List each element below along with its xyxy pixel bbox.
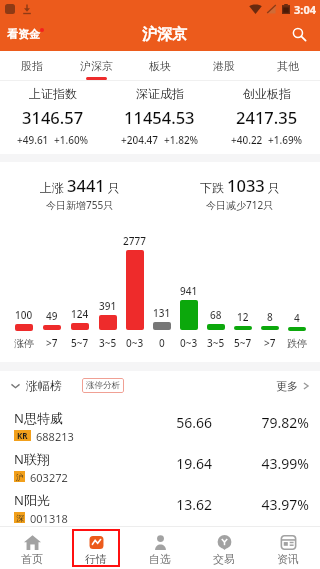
staticText: 沪深京 bbox=[80, 59, 113, 73]
staticText: 688213 bbox=[36, 429, 74, 441]
staticText: 板块 bbox=[149, 59, 171, 73]
staticText: N联翔 bbox=[14, 450, 50, 468]
staticText: 3:04 bbox=[294, 2, 316, 16]
staticText: 5~7 bbox=[234, 336, 252, 350]
staticText: 8 bbox=[267, 310, 273, 324]
staticText: 今日新增755只 bbox=[46, 198, 114, 212]
button[interactable]: 上涨 bbox=[0, 162, 160, 215]
staticText: 港股 bbox=[213, 59, 235, 73]
staticText: 43.97% bbox=[259, 495, 309, 514]
button[interactable]: 沪深京 bbox=[64, 51, 128, 80]
staticText: 603272 bbox=[30, 470, 68, 482]
staticText: 0~3 bbox=[180, 336, 198, 350]
staticText: +204.47 bbox=[121, 133, 159, 147]
button[interactable]: 行情 bbox=[64, 527, 128, 569]
staticText: 391 bbox=[99, 299, 117, 313]
staticText: +1.60% bbox=[54, 133, 89, 147]
staticText: 只 bbox=[268, 180, 280, 195]
staticText: >7 bbox=[46, 336, 58, 350]
staticText: KR bbox=[17, 430, 28, 441]
staticText: 5~7 bbox=[71, 336, 89, 350]
staticText: +49.61 bbox=[17, 133, 49, 147]
staticText: N思特威 bbox=[14, 409, 63, 427]
staticText: 3441 bbox=[67, 174, 105, 196]
staticText: 行情 bbox=[85, 552, 107, 566]
staticText: 只 bbox=[108, 180, 120, 195]
staticText: 0~3 bbox=[126, 336, 144, 350]
staticText: 跌停 bbox=[287, 337, 307, 350]
staticText: +40.22 bbox=[231, 133, 263, 147]
staticText: >7 bbox=[264, 336, 276, 350]
staticText: 资讯 bbox=[277, 552, 299, 566]
staticText: 100 bbox=[15, 308, 33, 322]
staticText: 56.66 bbox=[156, 413, 212, 432]
button[interactable]: 上证指数 bbox=[0, 81, 106, 154]
button[interactable]: N联翔 bbox=[0, 441, 320, 482]
staticText: 4 bbox=[294, 311, 300, 325]
staticText: 13.62 bbox=[156, 495, 212, 514]
staticText: 创业板指 bbox=[243, 86, 291, 101]
staticText: N阳光 bbox=[14, 491, 50, 509]
staticText: 12 bbox=[237, 310, 249, 324]
staticText: 2417.35 bbox=[236, 106, 298, 128]
staticText: 深证成指 bbox=[136, 86, 184, 101]
staticText: 49 bbox=[46, 309, 58, 323]
staticText: 1033 bbox=[227, 174, 265, 196]
staticText: +1.82% bbox=[164, 133, 199, 147]
staticText: 2777 bbox=[123, 234, 146, 248]
staticText: +1.69% bbox=[268, 133, 303, 147]
button[interactable]: 股指 bbox=[0, 51, 64, 80]
staticText: 看资金 bbox=[7, 27, 40, 41]
button[interactable]: 自选 bbox=[128, 527, 192, 569]
staticText: 3146.57 bbox=[22, 106, 84, 128]
staticText: 19.64 bbox=[156, 454, 212, 473]
staticText: 3~5 bbox=[99, 336, 117, 350]
button[interactable]: 深证成指 bbox=[106, 81, 213, 154]
staticText: 首页 bbox=[21, 552, 43, 566]
staticText: 沪 bbox=[16, 472, 24, 482]
staticText: 131 bbox=[153, 306, 171, 320]
staticText: 更多 bbox=[276, 379, 298, 393]
staticText: 上证指数 bbox=[29, 86, 77, 101]
staticText: 43.99% bbox=[259, 454, 309, 473]
staticText: 68 bbox=[210, 308, 222, 322]
staticText: 124 bbox=[71, 307, 89, 321]
button[interactable]: 下跌 bbox=[160, 162, 320, 215]
staticText: 001318 bbox=[30, 511, 68, 523]
button[interactable]: 首页 bbox=[0, 527, 64, 569]
button[interactable]: N阳光 bbox=[0, 482, 320, 523]
staticText: 自选 bbox=[149, 552, 171, 566]
staticText: 上涨 bbox=[40, 180, 64, 195]
staticText: 0 bbox=[159, 336, 165, 350]
staticText: 11454.53 bbox=[124, 106, 195, 128]
staticText: 股指 bbox=[21, 59, 43, 73]
staticText: 3~5 bbox=[207, 336, 225, 350]
staticText: 涨停 bbox=[14, 337, 34, 350]
button[interactable]: 其他 bbox=[256, 51, 320, 80]
staticText: 其他 bbox=[277, 59, 299, 73]
staticText: 下跌 bbox=[200, 180, 224, 195]
button[interactable]: Search bbox=[288, 23, 310, 45]
button[interactable]: 资讯 bbox=[256, 527, 320, 569]
button[interactable]: 港股 bbox=[192, 51, 256, 80]
staticText: 深 bbox=[16, 513, 24, 523]
staticText: 涨幅榜 bbox=[26, 378, 62, 393]
staticText: 79.82% bbox=[259, 413, 309, 432]
button[interactable]: 板块 bbox=[128, 51, 192, 80]
staticText: 941 bbox=[180, 284, 198, 298]
button[interactable]: 涨停分析 bbox=[82, 378, 124, 393]
button[interactable]: 更多 bbox=[276, 379, 309, 393]
button[interactable]: 看资金 bbox=[5, 24, 42, 44]
staticText: 沪深京 bbox=[142, 25, 187, 44]
button[interactable]: N思特威 bbox=[0, 400, 320, 441]
button[interactable]: 创业板指 bbox=[213, 81, 320, 154]
button[interactable]: 交易 bbox=[192, 527, 256, 569]
staticText: 交易 bbox=[213, 552, 235, 566]
staticText: 今日减少712只 bbox=[206, 198, 274, 212]
staticText: 涨停分析 bbox=[86, 380, 120, 391]
